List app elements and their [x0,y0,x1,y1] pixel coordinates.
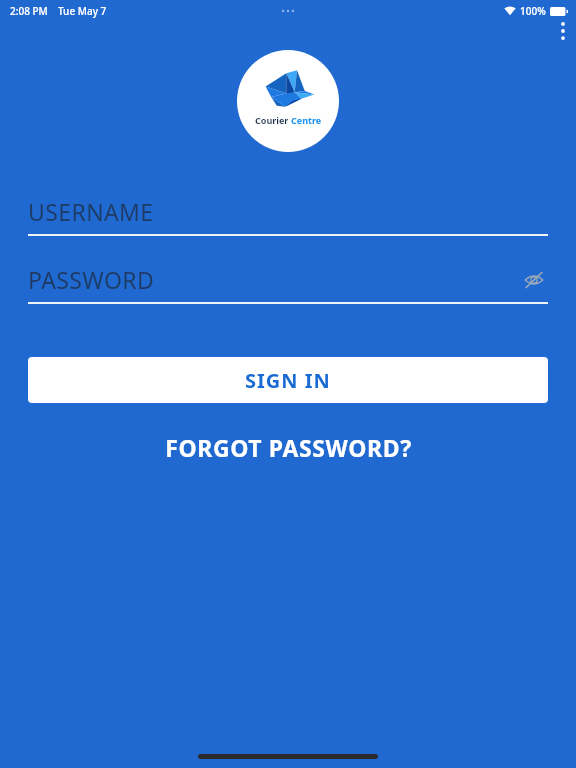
button[interactable]: PASSWORD [28,264,548,304]
button[interactable]: FORGOT PASSWORD? [28,425,548,469]
staticText: Tue May 7 [58,4,107,18]
staticText: SIGN IN [245,367,331,394]
button[interactable]: SIGN IN [28,357,548,403]
staticText: Centre [291,114,322,126]
staticText: 2:08 PM [10,4,48,18]
staticText: 100% [520,4,546,18]
button[interactable]: Show password [518,264,550,296]
staticText: Courier [255,114,289,126]
button[interactable]: More options [550,18,576,44]
staticText: PASSWORD [28,264,155,295]
staticText: USERNAME [28,196,154,227]
button[interactable]: USERNAME [28,196,548,236]
staticText: FORGOT PASSWORD? [165,432,412,463]
